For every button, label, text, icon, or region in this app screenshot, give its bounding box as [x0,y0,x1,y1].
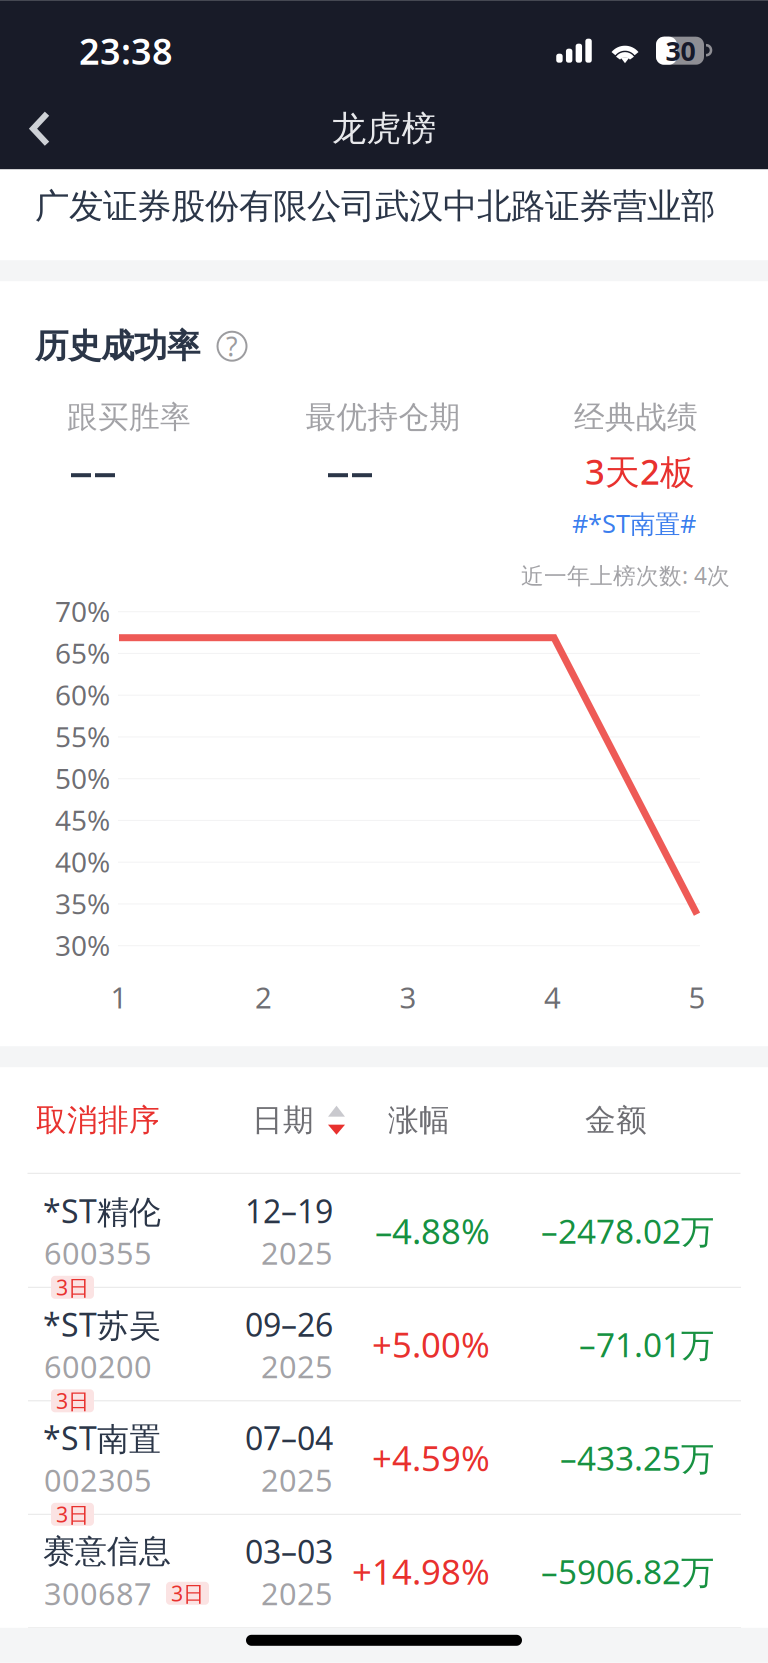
button[interactable]: *ST精伦 [0,1174,768,1287]
staticText: –433.25万 [560,1436,714,1480]
staticText: *ST南置 [43,1416,161,1459]
staticText: 日期 [252,1101,314,1139]
staticText: –2478.02万 [541,1209,714,1253]
staticText: 3天2板 [585,448,695,494]
staticText: 55% [55,718,110,755]
staticText: #*ST南置# [572,506,696,540]
staticText: 600355 [44,1232,152,1273]
staticText: 历史成功率 [35,326,200,367]
button[interactable]: *ST苏吴 [0,1287,768,1401]
staticText: 03–03 [245,1530,333,1573]
staticText: 300687 [44,1573,152,1614]
staticText: 002305 [44,1459,152,1500]
staticText: 45% [55,801,110,839]
button[interactable]: *ST南置 [0,1401,768,1514]
staticText: 50% [55,760,110,797]
staticText: 30% [55,927,110,964]
staticText: 最优持仓期 [305,398,460,436]
staticText: 60% [55,676,110,713]
staticText: 涨幅 [388,1101,450,1139]
staticText: 40% [55,843,110,880]
staticText: 3 [399,978,416,1017]
staticText: –71.01万 [579,1322,714,1366]
staticText: *ST苏吴 [43,1303,161,1346]
staticText: 取消排序 [36,1101,160,1139]
staticText: 赛意信息 [43,1532,171,1571]
staticText: 2025 [261,1459,333,1500]
staticText: 3日 [56,1500,89,1528]
staticText: 12–19 [245,1190,333,1232]
staticText: 龙虎榜 [331,107,436,150]
staticText: 经典战绩 [574,398,698,436]
staticText: 30 [665,33,695,68]
staticText: *ST精伦 [43,1189,161,1232]
staticText: 09–26 [245,1303,333,1346]
staticText: 1 [110,978,127,1017]
staticText: 广发证券股份有限公司武汉中北路证券营业部 [35,184,715,228]
staticText: 23:38 [79,27,173,75]
staticText: 3日 [56,1273,89,1301]
staticText: 4 [544,978,561,1017]
staticText: –5906.82万 [541,1549,714,1593]
staticText: 07–04 [245,1417,333,1459]
button[interactable]: 取消排序 [0,1067,160,1107]
staticText: 3日 [171,1579,204,1607]
staticText: 65% [55,634,110,672]
staticText: 跟买胜率 [67,398,191,436]
staticText: 600200 [44,1346,152,1387]
staticText: ? [226,328,238,364]
button[interactable]: 赛意信息 [0,1514,768,1628]
staticText: 35% [55,885,110,922]
button[interactable]: Back [0,88,75,169]
staticText: 2025 [261,1346,333,1387]
button[interactable]: 日期 [0,1067,120,1107]
staticText: 70% [55,593,110,630]
staticText: +14.98% [352,1548,490,1594]
staticText: 2025 [261,1232,333,1273]
staticText: 2 [255,978,272,1017]
button[interactable]: Help [213,327,251,365]
staticText: +4.59% [372,1435,490,1481]
staticText: 3日 [56,1387,89,1415]
staticText: –4.88% [375,1208,490,1254]
staticText: 5 [688,978,705,1017]
staticText: 2025 [261,1573,333,1614]
staticText: +5.00% [372,1321,490,1367]
staticText: 近一年上榜次数: 4次 [521,560,730,590]
staticText: 金额 [585,1101,647,1139]
